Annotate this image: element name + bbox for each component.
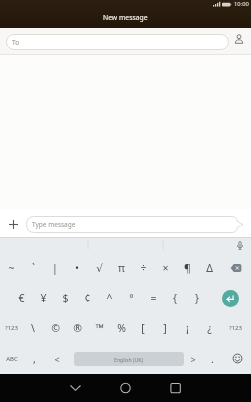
button[interactable]: $ [54,283,76,313]
button[interactable]: To [6,34,229,50]
staticText: ] [163,321,167,335]
staticText: New message [103,13,148,22]
staticText: × [162,261,169,275]
button[interactable]: ¥ [32,283,54,313]
staticText: ° [129,291,134,305]
staticText: ¡ [186,321,189,335]
button[interactable]: ¢ [76,283,98,313]
staticText: √ [96,262,103,274]
button[interactable] [163,376,188,401]
staticText: | [52,261,58,275]
staticText: , [33,352,36,366]
staticText: • [75,261,79,275]
button[interactable]: ™ [88,313,110,343]
staticText: ¿ [207,321,212,335]
button[interactable]: [ [132,313,154,343]
button[interactable]: © [44,313,66,343]
button[interactable]: ¿ [198,313,220,343]
staticText: $ [62,291,69,305]
button[interactable]: , [23,343,45,374]
button[interactable] [232,33,246,47]
button[interactable] [220,253,251,283]
staticText: ¢ [84,291,91,305]
staticText: ~ [8,261,15,275]
staticText: ™ [95,321,104,335]
button[interactable] [63,376,88,401]
staticText: ` [32,261,35,275]
staticText: Type message [32,220,76,229]
button[interactable]: ¶ [176,253,198,283]
staticText: } [195,291,199,305]
staticText: = [150,291,157,305]
button[interactable]: ¡ [176,313,198,343]
button[interactable]: ° [120,283,142,313]
staticText: 10:00 [234,0,249,8]
button[interactable]: • [66,253,88,283]
staticText: ?123 [229,324,242,332]
staticText: π [118,261,125,275]
staticText: ¥ [40,291,47,305]
button[interactable]: ] [154,313,176,343]
staticText: ?123 [5,324,18,332]
button[interactable]: Δ [198,253,220,283]
button[interactable]: { [164,283,186,313]
button[interactable]: ?123 [220,313,251,343]
button[interactable] [7,218,20,231]
button[interactable]: € [10,283,32,313]
button[interactable]: English (UK) [74,352,184,366]
button[interactable]: ~ [0,253,22,283]
button[interactable]: ^ [98,283,120,313]
button[interactable]: \ [22,313,44,343]
button[interactable] [113,376,138,401]
button[interactable]: ABC [0,343,23,374]
button[interactable]: ÷ [132,253,154,283]
staticText: Δ [206,261,213,275]
staticText: ¶ [184,261,191,275]
staticText: < [54,353,60,365]
staticText: ABC [6,355,18,363]
button[interactable]: < [45,343,68,374]
button[interactable] [223,343,251,374]
button[interactable]: % [110,313,132,343]
staticText: © [51,321,60,335]
button[interactable]: = [142,283,164,313]
staticText: \ [31,321,35,335]
staticText: [ [141,321,145,335]
button[interactable]: ` [22,253,44,283]
staticText: To [12,38,20,47]
staticText: ^ [106,291,113,305]
staticText: { [173,291,177,305]
staticText: > [190,353,196,365]
button[interactable]: ?123 [0,313,22,343]
staticText: % [117,321,126,335]
button[interactable]: ® [66,313,88,343]
button[interactable]: } [186,283,208,313]
button[interactable]: √ [88,253,110,283]
button[interactable]: . [202,343,223,374]
button[interactable]: Type message [26,216,244,233]
staticText: € [18,291,25,305]
staticText: English (UK) [114,356,144,363]
button[interactable] [222,290,239,307]
button[interactable]: × [154,253,176,283]
staticText: ÷ [140,261,147,275]
button[interactable]: > [184,343,202,374]
button[interactable]: π [110,253,132,283]
button[interactable] [234,240,246,252]
staticText: ® [73,321,82,335]
button[interactable]: | [44,253,66,283]
staticText: . [211,352,214,366]
